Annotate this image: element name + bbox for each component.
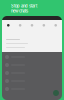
button[interactable]: New chat [53,90,59,96]
staticText: Stop and start [11,3,37,8]
staticText: new chats [11,8,28,13]
